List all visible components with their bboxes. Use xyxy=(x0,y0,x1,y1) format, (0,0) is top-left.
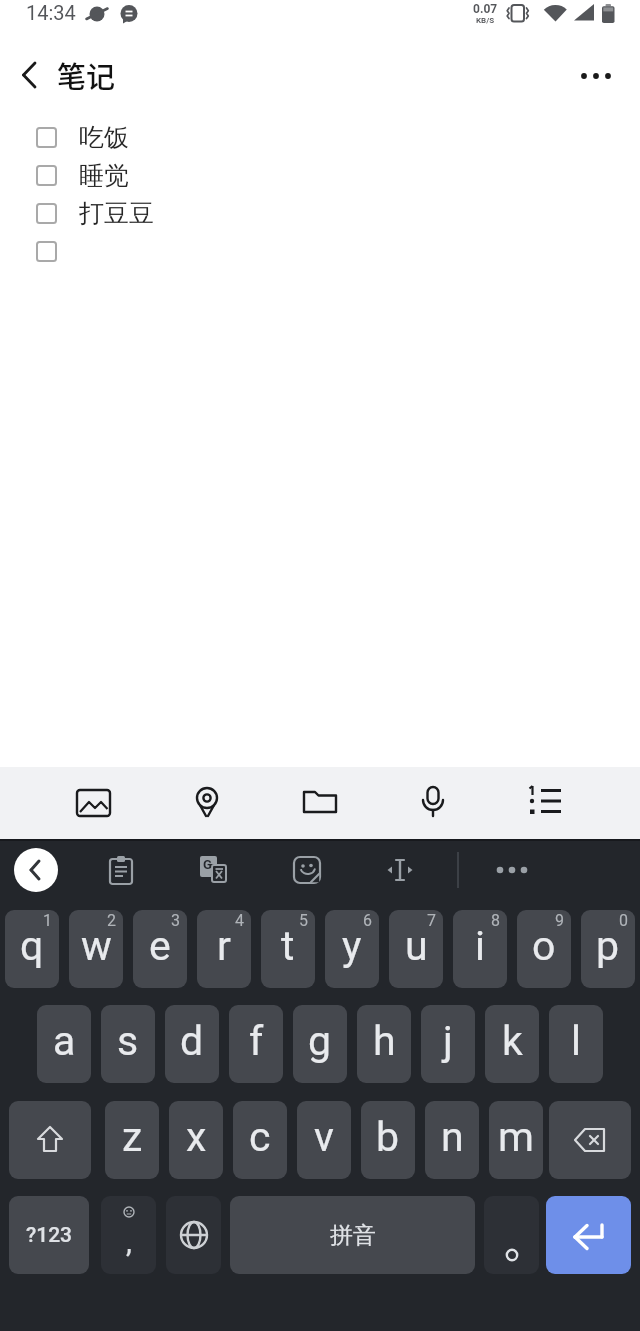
button[interactable] xyxy=(66,775,122,831)
button[interactable]: 打豆豆 xyxy=(0,194,640,232)
button[interactable]: ?123 xyxy=(9,1196,89,1274)
button[interactable]: g xyxy=(293,1005,347,1083)
staticText: m xyxy=(498,1113,534,1161)
button[interactable] xyxy=(376,846,424,894)
staticText: q xyxy=(20,922,44,970)
button[interactable] xyxy=(405,775,461,831)
staticText: e xyxy=(149,922,171,970)
staticText: c xyxy=(249,1113,271,1161)
staticText: ?123 xyxy=(26,1223,73,1248)
staticText: , xyxy=(126,1224,132,1259)
button[interactable]: q xyxy=(5,910,59,988)
button[interactable]: G xyxy=(190,846,238,894)
staticText: 3 xyxy=(171,911,180,930)
staticText: 0 xyxy=(619,911,628,930)
staticText: 打豆豆 xyxy=(79,198,154,229)
button[interactable]: t xyxy=(261,910,315,988)
button[interactable]: k xyxy=(485,1005,539,1083)
staticText: l xyxy=(571,1017,581,1065)
button[interactable]: v xyxy=(297,1101,351,1179)
button[interactable]: f xyxy=(229,1005,283,1083)
button[interactable]: y xyxy=(325,910,379,988)
staticText: d xyxy=(180,1017,204,1065)
button[interactable]: , xyxy=(101,1196,156,1274)
staticText: f xyxy=(249,1017,264,1065)
staticText: o xyxy=(532,922,556,970)
staticText: y xyxy=(342,922,362,970)
staticText: 8 xyxy=(491,911,500,930)
staticText: i xyxy=(475,922,485,970)
button[interactable]: p xyxy=(581,910,635,988)
staticText: z xyxy=(122,1113,143,1161)
button[interactable] xyxy=(166,1196,221,1274)
button[interactable]: z xyxy=(105,1101,159,1179)
button[interactable] xyxy=(97,846,145,894)
staticText: 2 xyxy=(107,911,116,930)
staticText: 1 xyxy=(43,911,52,930)
button[interactable] xyxy=(14,848,58,892)
staticText: KB/S xyxy=(476,16,495,25)
button[interactable]: x xyxy=(169,1101,223,1179)
staticText: 14:34 xyxy=(26,1,76,24)
staticText: j xyxy=(443,1017,453,1065)
button[interactable] xyxy=(518,775,574,831)
button[interactable]: l xyxy=(549,1005,603,1083)
button[interactable]: 睡觉 xyxy=(0,156,640,194)
button[interactable] xyxy=(283,846,331,894)
staticText: 4 xyxy=(235,911,244,930)
staticText: 7 xyxy=(427,911,436,930)
button[interactable] xyxy=(292,775,348,831)
staticText: v xyxy=(314,1113,334,1161)
staticText: 0.07 xyxy=(473,2,498,16)
button[interactable] xyxy=(179,775,235,831)
staticText: x xyxy=(186,1113,207,1161)
staticText: 吃饭 xyxy=(79,122,129,153)
button[interactable]: a xyxy=(37,1005,91,1083)
staticText: n xyxy=(441,1113,464,1161)
staticText: 拼音 xyxy=(330,1221,376,1250)
staticText: h xyxy=(373,1017,396,1065)
staticText: b xyxy=(376,1113,400,1161)
staticText: 9 xyxy=(555,911,564,930)
button[interactable]: 吃饭 xyxy=(0,118,640,156)
button[interactable]: o xyxy=(517,910,571,988)
button[interactable]: s xyxy=(101,1005,155,1083)
button[interactable]: c xyxy=(233,1101,287,1179)
staticText: p xyxy=(596,922,620,970)
staticText: g xyxy=(308,1017,332,1065)
button[interactable] xyxy=(9,1101,91,1179)
button[interactable]: 拼音 xyxy=(230,1196,475,1274)
button[interactable]: b xyxy=(361,1101,415,1179)
staticText: u xyxy=(405,922,428,970)
staticText: 睡觉 xyxy=(79,160,129,191)
button[interactable]: r xyxy=(197,910,251,988)
staticText: t xyxy=(281,922,295,970)
staticText: 6 xyxy=(363,911,372,930)
staticText: G xyxy=(203,857,212,872)
button[interactable]: w xyxy=(69,910,123,988)
button[interactable] xyxy=(546,1196,631,1274)
staticText: w xyxy=(81,922,112,970)
button[interactable] xyxy=(488,846,536,894)
button[interactable] xyxy=(549,1101,631,1179)
button[interactable]: e xyxy=(133,910,187,988)
staticText: r xyxy=(217,922,231,970)
button[interactable]: m xyxy=(489,1101,543,1179)
button[interactable] xyxy=(568,48,624,104)
button[interactable]: d xyxy=(165,1005,219,1083)
staticText: 5 xyxy=(299,911,308,930)
staticText: a xyxy=(53,1017,76,1065)
staticText: s xyxy=(117,1017,139,1065)
button[interactable]: i xyxy=(453,910,507,988)
button[interactable]: n xyxy=(425,1101,479,1179)
button[interactable]: u xyxy=(389,910,443,988)
button[interactable] xyxy=(10,54,52,96)
button[interactable] xyxy=(0,232,640,270)
staticText: k xyxy=(502,1017,523,1065)
button[interactable]: h xyxy=(357,1005,411,1083)
staticText: 笔记 xyxy=(57,54,116,96)
button[interactable]: j xyxy=(421,1005,475,1083)
button[interactable] xyxy=(484,1196,539,1274)
